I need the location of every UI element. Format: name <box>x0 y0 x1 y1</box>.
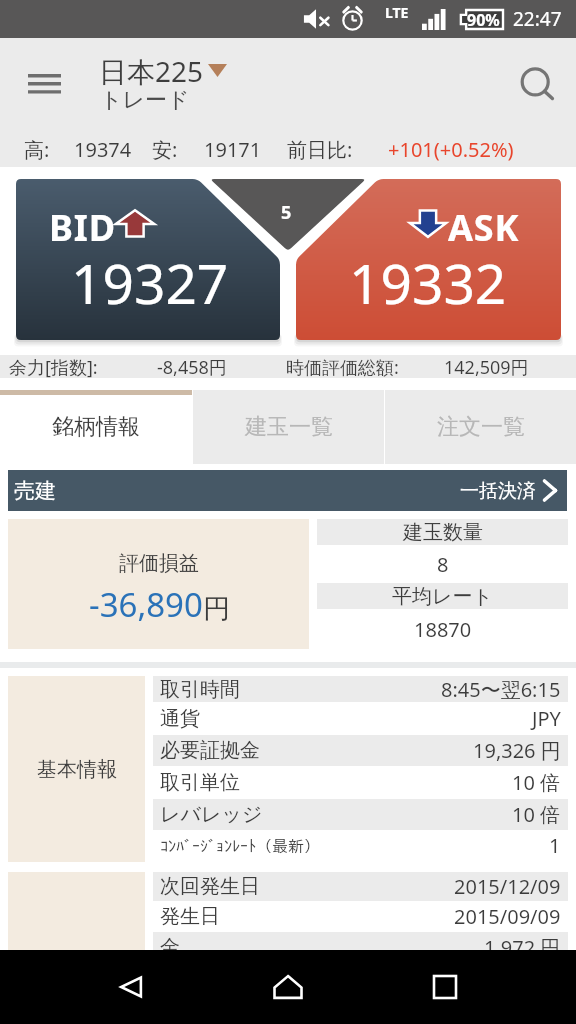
staticText: 19374 <box>74 136 132 163</box>
staticText: 銘柄情報 <box>52 413 140 441</box>
staticText: 142,509円 <box>444 355 529 378</box>
staticText: 金 <box>160 935 180 960</box>
staticText: 前日比: <box>287 136 353 163</box>
button[interactable]: 注文一覧 <box>385 390 576 464</box>
button[interactable]: Menu <box>20 64 69 106</box>
staticText: 安: <box>152 136 178 163</box>
button[interactable]: 銘柄情報 <box>0 390 192 464</box>
staticText: LTE <box>385 3 409 22</box>
staticText: 19171 <box>204 136 262 163</box>
staticText: BID <box>49 203 116 252</box>
button[interactable]: Back <box>105 961 157 1013</box>
staticText: ｺﾝﾊﾞｰｼﾞｮﾝﾚｰﾄ（最新） <box>160 838 320 854</box>
staticText: 必要証拠金 <box>160 738 260 763</box>
staticText: 平均レート <box>392 584 493 609</box>
staticText: 評価損益 <box>119 551 199 576</box>
staticText: 注文一覧 <box>437 413 525 441</box>
staticText: 2015/12/09 <box>454 873 561 900</box>
staticText: -36,890 <box>89 582 203 627</box>
staticText: トレード <box>100 86 190 114</box>
staticText: 5 <box>281 200 292 225</box>
button[interactable]: ASK <box>296 179 561 340</box>
staticText: 基本情報 <box>37 757 117 782</box>
staticText: 90% <box>467 9 500 30</box>
staticText: +101(+0.52%) <box>388 136 514 163</box>
staticText: 19,326 円 <box>473 737 561 764</box>
button[interactable]: Search <box>511 57 563 109</box>
staticText: 通貨 <box>160 706 200 731</box>
staticText: 売建 <box>14 478 56 504</box>
staticText: 8 <box>437 551 449 578</box>
staticText: 高: <box>24 136 50 163</box>
staticText: ASK <box>448 203 520 252</box>
staticText: 1 <box>549 832 561 859</box>
staticText: 8:45〜翌6:15 <box>441 676 561 702</box>
staticText: 18870 <box>414 616 472 643</box>
staticText: 取引時間 <box>160 677 240 702</box>
staticText: 取引単位 <box>160 770 240 795</box>
staticText: 日本225 <box>99 52 204 90</box>
staticText: 19327 <box>71 245 229 320</box>
button[interactable]: Recents <box>419 961 471 1013</box>
staticText: JPY <box>532 705 561 732</box>
staticText: 一括決済 <box>460 479 536 503</box>
staticText: 時価評価総額: <box>286 355 399 378</box>
staticText: -8,458円 <box>157 355 227 378</box>
button[interactable]: BID <box>16 179 280 340</box>
staticText: 1,972 円 <box>484 934 561 961</box>
staticText: 円 <box>203 592 230 626</box>
staticText: 22:47 <box>513 6 562 32</box>
staticText: 10 倍 <box>512 769 561 796</box>
staticText: 余力[指数]: <box>9 355 98 378</box>
button[interactable]: Home <box>262 961 314 1013</box>
staticText: レバレッジ <box>160 802 263 827</box>
staticText: 発生日 <box>160 904 220 929</box>
staticText: 建玉数量 <box>403 520 483 545</box>
staticText: 建玉一覧 <box>245 413 333 441</box>
staticText: 次回発生日 <box>160 874 260 899</box>
button[interactable]: 売建 <box>8 470 567 511</box>
staticText: 19332 <box>349 245 507 320</box>
staticText: 10 倍 <box>512 801 561 828</box>
staticText: 2015/09/09 <box>454 903 561 930</box>
button[interactable]: 建玉一覧 <box>193 390 384 464</box>
